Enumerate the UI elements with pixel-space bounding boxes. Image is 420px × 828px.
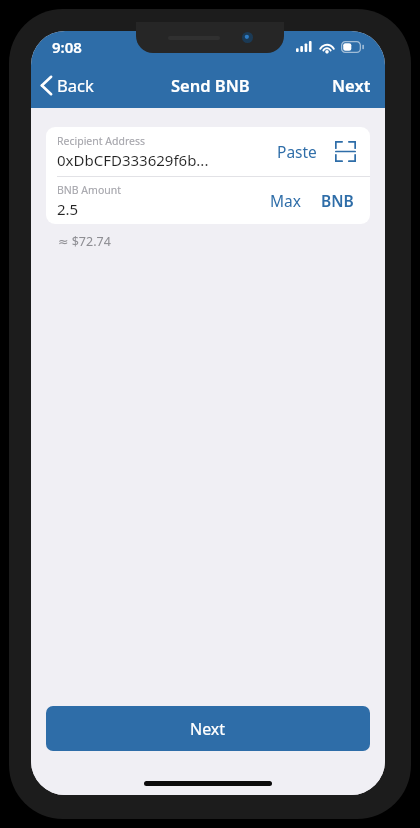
staticText: BNB Amount <box>57 183 122 197</box>
staticText: Max <box>270 190 301 211</box>
staticText: 0xDbCFD333629f6b... <box>57 150 209 170</box>
staticText: Next <box>190 718 226 740</box>
button[interactable]: Paste <box>271 135 323 168</box>
button[interactable]: Recipient Address <box>46 127 370 176</box>
button[interactable]: Scan QR code <box>331 137 360 166</box>
button[interactable]: Back <box>31 68 104 102</box>
button[interactable]: Next <box>318 68 385 102</box>
staticText: BNB <box>321 190 354 211</box>
button[interactable]: BNB <box>319 184 356 217</box>
staticText: Back <box>57 74 94 96</box>
staticText: Next <box>332 74 371 96</box>
staticText: 9:08 <box>52 37 82 57</box>
staticText: Paste <box>277 141 317 162</box>
button[interactable]: Next <box>46 706 370 751</box>
button[interactable]: Max <box>264 184 307 217</box>
button[interactable]: BNB Amount <box>46 177 370 224</box>
staticText: Send BNB <box>171 74 250 96</box>
staticText: Recipient Address <box>57 134 146 148</box>
staticText: ≈ $72.74 <box>58 233 111 250</box>
staticText: 2.5 <box>57 199 79 219</box>
